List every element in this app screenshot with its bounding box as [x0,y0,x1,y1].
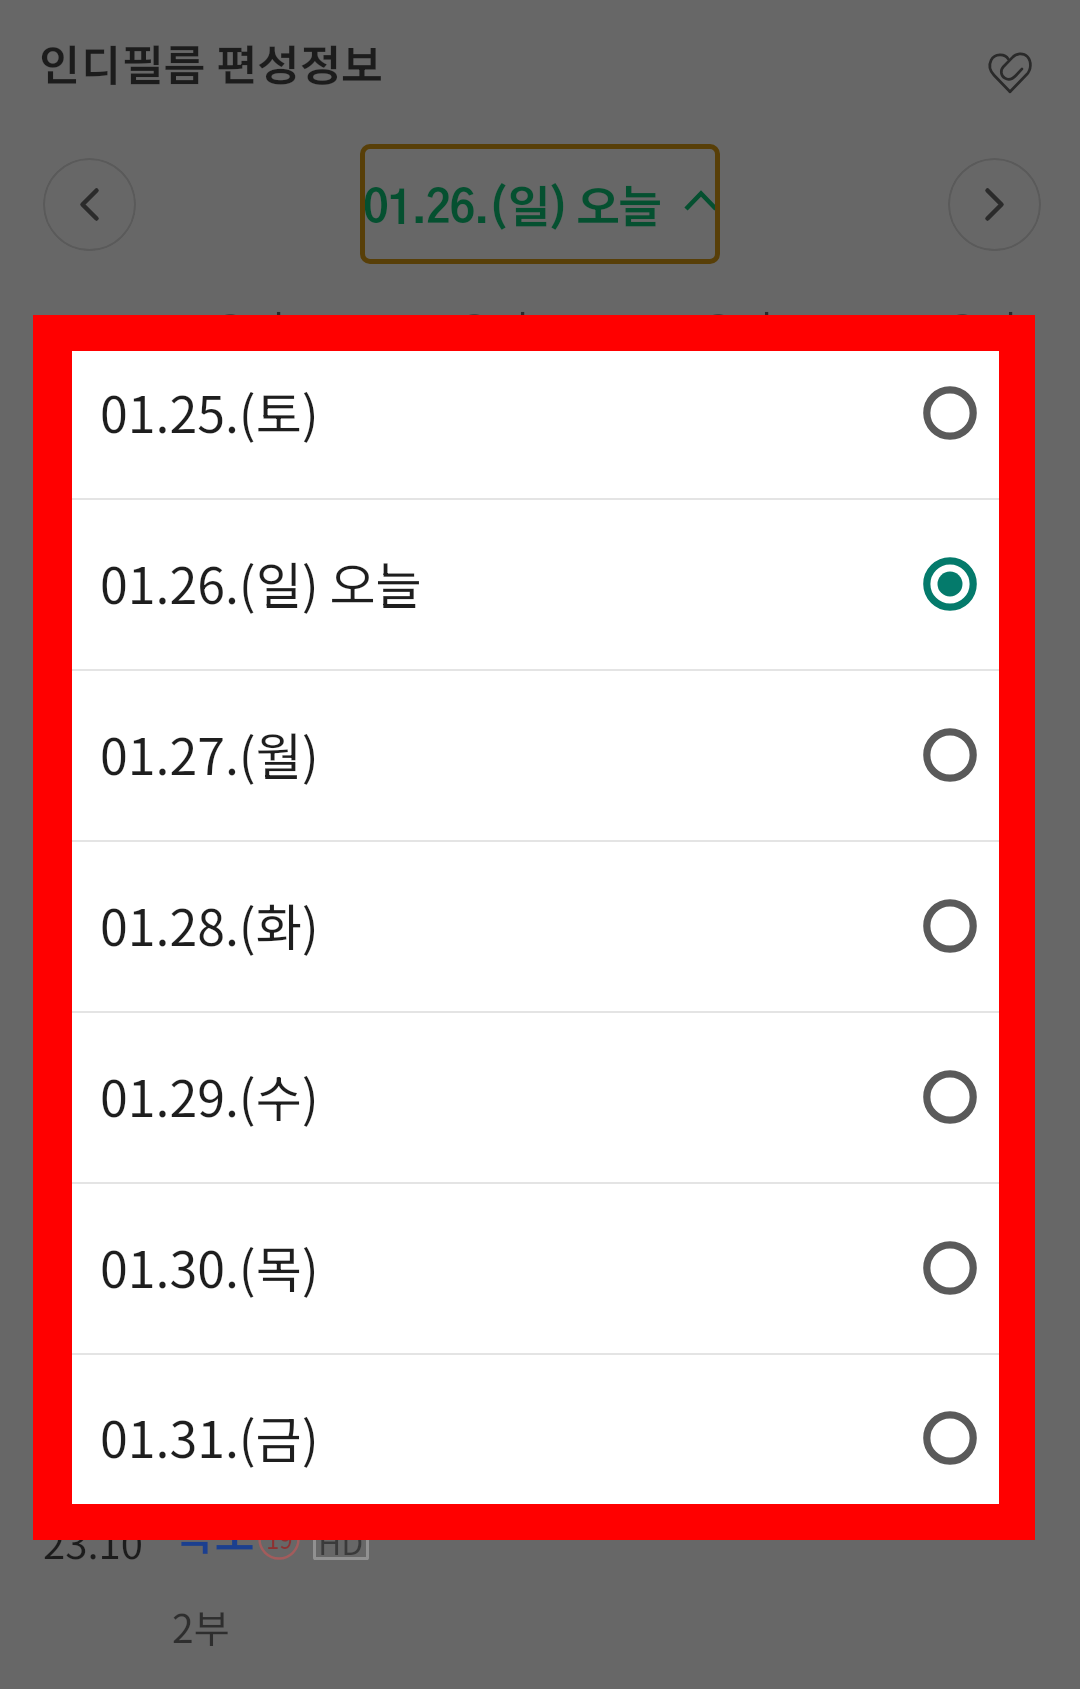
staticText: 속도 [175,1518,255,1558]
staticText: 01.28.(화) [100,888,319,960]
button[interactable]: 01.27.(월) [72,671,999,842]
staticText: 01.25.(토) [100,375,319,447]
staticText: 오전 [944,299,1018,357]
staticText: 01.31.(금) [100,1400,319,1472]
button[interactable]: Next day [948,158,1041,251]
button[interactable]: Previous day [43,158,136,251]
button[interactable]: 01.25.(토) [72,351,999,500]
staticText: 01.30.(목) [100,1230,319,1302]
staticText: 오전 [700,299,774,357]
staticText: 오전 [212,299,286,357]
staticText: 오전 [456,299,530,357]
staticText: 01.29.(수) [100,1059,319,1131]
staticText: 01.26.(일) 오늘 [363,188,661,232]
staticText: 23.10 [43,1513,143,1571]
staticText: 01.27.(월) [100,717,319,789]
staticText: 01.26.(일) 오늘 [100,546,422,618]
button[interactable]: 01.26.(일) 오늘 [72,500,999,671]
button[interactable]: 01.30.(목) [72,1184,999,1355]
staticText: HD [318,1518,364,1560]
staticText: 19 [266,1521,293,1556]
button[interactable]: 01.26.(일) 오늘 [360,144,720,264]
button[interactable]: 01.29.(수) [72,1013,999,1184]
button[interactable]: 01.31.(금) [72,1355,999,1504]
staticText: 2부 [172,1598,230,1654]
button[interactable]: 01.28.(화) [72,842,999,1013]
staticText: 인디필름 편성정보 [38,47,383,89]
button[interactable]: Favorite [975,35,1045,105]
